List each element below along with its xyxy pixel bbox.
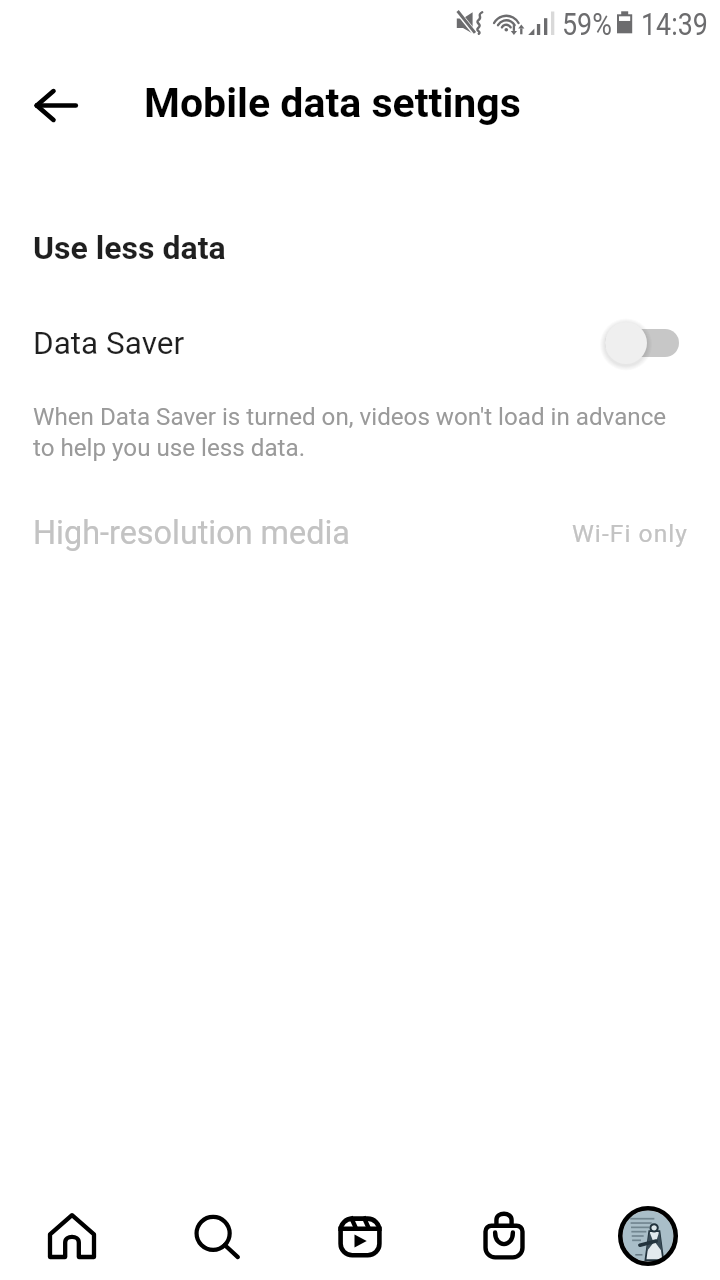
button[interactable]: Home xyxy=(0,1192,144,1280)
button[interactable]: Shop xyxy=(432,1192,576,1280)
staticText: 14:39 xyxy=(641,5,709,42)
button[interactable]: Reels xyxy=(288,1192,432,1280)
staticText: Use less data xyxy=(33,229,226,267)
staticText: Mobile data settings xyxy=(144,79,521,127)
staticText: Data Saver xyxy=(33,325,185,362)
button[interactable]: High-resolution media xyxy=(0,505,720,561)
button[interactable]: Data Saver xyxy=(0,313,720,373)
button[interactable]: Back xyxy=(6,78,62,134)
button[interactable]: Profile xyxy=(576,1192,720,1280)
button[interactable]: Search xyxy=(144,1192,288,1280)
staticText: Wi-Fi only xyxy=(572,519,688,548)
button[interactable]: Data Saver toggle xyxy=(597,313,693,373)
staticText: High-resolution media xyxy=(33,514,350,552)
staticText: 59% xyxy=(562,5,613,42)
staticText: When Data Saver is turned on, videos won… xyxy=(33,403,713,462)
